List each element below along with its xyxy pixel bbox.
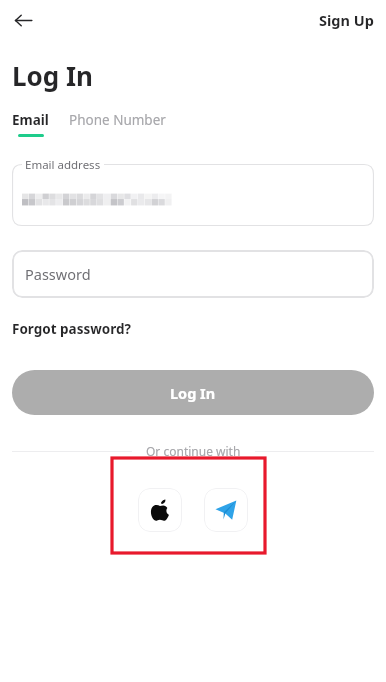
button[interactable] [22, 192, 172, 208]
button[interactable]: Back [6, 3, 40, 37]
staticText: Password [25, 264, 91, 284]
button[interactable]: Forgot password? [12, 320, 131, 338]
button[interactable]: Log In [12, 370, 374, 415]
staticText: Email [12, 111, 49, 129]
button[interactable]: Password [12, 250, 374, 298]
staticText: Forgot password? [12, 320, 131, 338]
button[interactable]: Continue with Telegram [204, 488, 248, 532]
button[interactable]: Email [12, 111, 49, 137]
button[interactable]: Phone Number [69, 111, 166, 129]
button[interactable]: Continue with Apple [138, 488, 182, 532]
staticText: Sign Up [319, 10, 374, 30]
button[interactable]: Sign Up [307, 4, 386, 36]
staticText: Phone Number [69, 111, 166, 129]
staticText: Email address [25, 157, 101, 173]
staticText: Log In [12, 58, 93, 93]
staticText: Log In [170, 383, 216, 403]
staticText: Or continue with [146, 443, 241, 459]
